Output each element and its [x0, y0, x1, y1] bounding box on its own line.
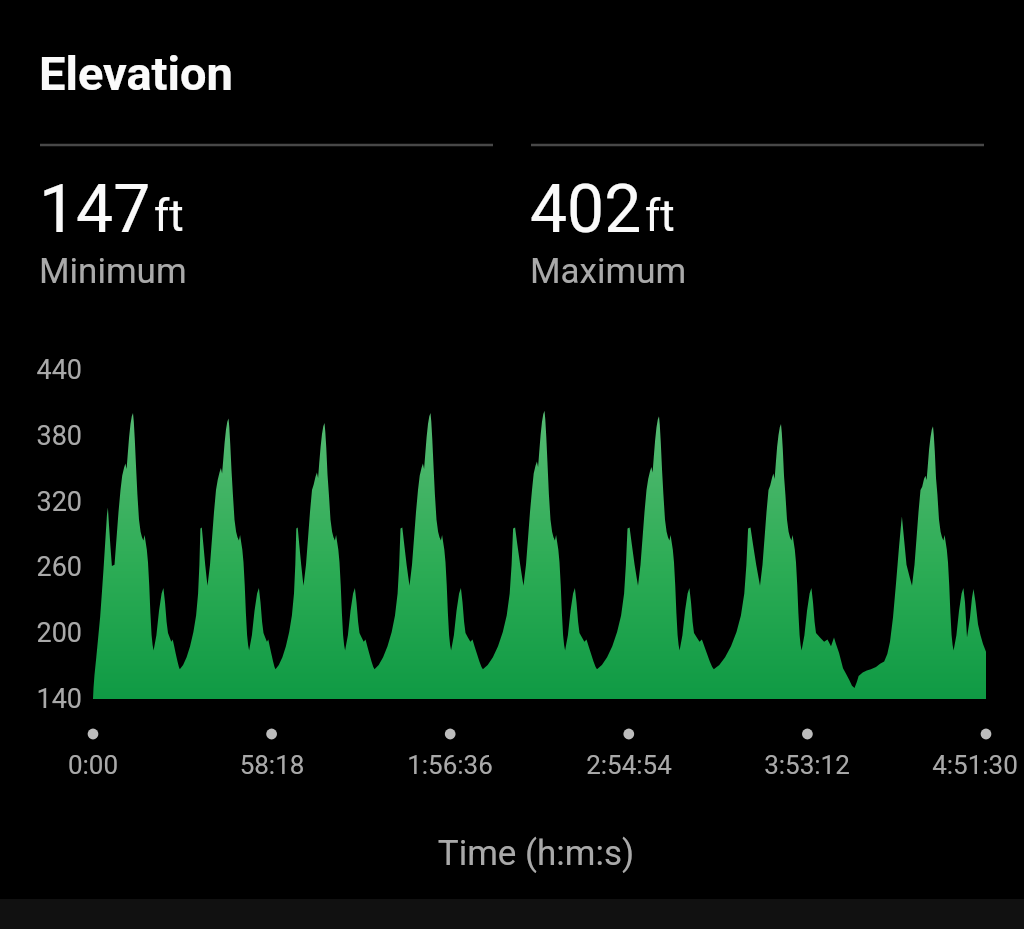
- staticText: ft: [154, 190, 184, 242]
- staticText: 440: [3, 354, 82, 386]
- button[interactable]: 147: [40, 160, 493, 295]
- staticText: 200: [3, 617, 82, 649]
- staticText: Maximum: [530, 251, 687, 292]
- staticText: ft: [645, 190, 675, 242]
- staticText: 4:51:30: [895, 750, 1024, 780]
- staticText: 1:56:36: [370, 750, 530, 780]
- staticText: 260: [3, 551, 82, 583]
- staticText: 3:53:12: [727, 750, 887, 780]
- staticText: 140: [3, 683, 82, 715]
- staticText: 2:54:54: [549, 750, 709, 780]
- button[interactable]: Elevation over time chart: [0, 340, 1024, 790]
- staticText: 380: [3, 420, 82, 452]
- staticText: Time (h:m:s): [336, 833, 736, 874]
- staticText: 0:00: [13, 750, 173, 780]
- staticText: 58:18: [192, 750, 352, 780]
- button[interactable]: Elevation: [30, 30, 240, 106]
- staticText: 320: [3, 486, 82, 518]
- staticText: Elevation: [39, 46, 233, 101]
- staticText: 147: [39, 171, 151, 248]
- button[interactable]: 402: [531, 160, 984, 295]
- staticText: 402: [530, 171, 642, 248]
- staticText: Minimum: [39, 251, 187, 292]
